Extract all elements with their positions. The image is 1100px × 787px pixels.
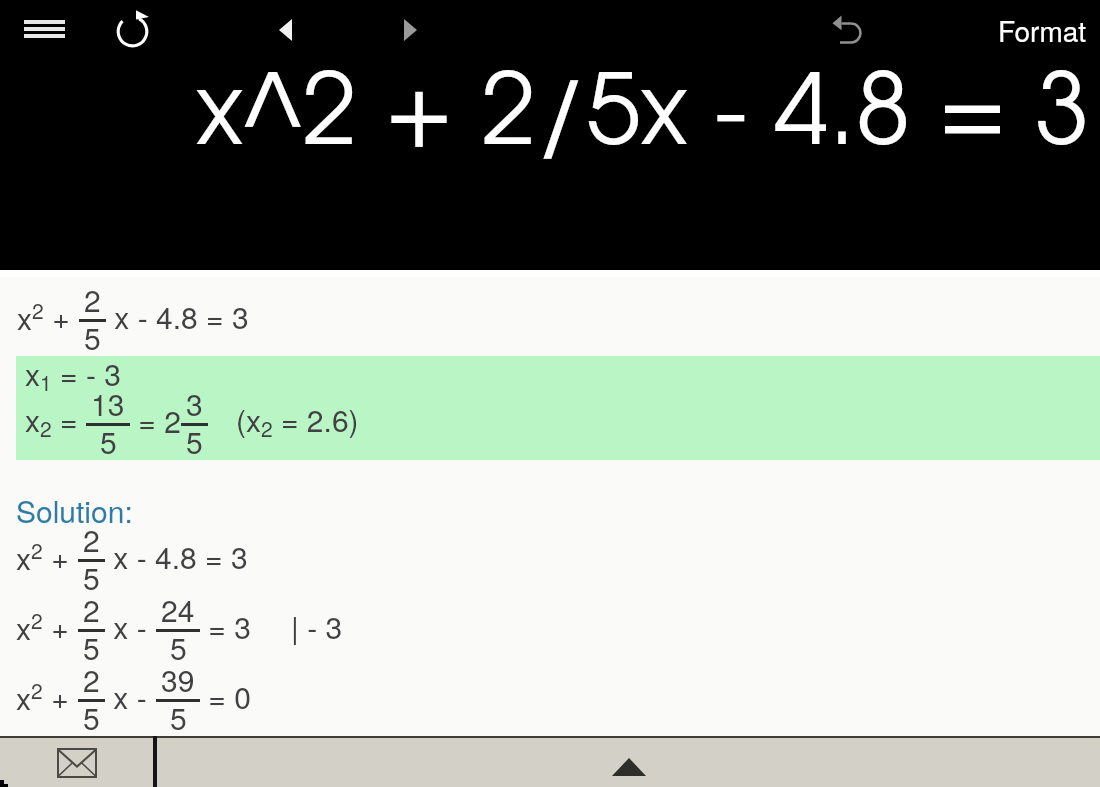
staticText: 13	[91, 382, 125, 425]
staticText: x2	[16, 675, 43, 718]
button[interactable]	[14, 8, 74, 52]
staticText: = 0	[200, 675, 251, 718]
staticText: x^2 + 2/5x - 4.8 = 3	[196, 72, 1090, 163]
staticText: 5	[170, 696, 187, 739]
staticText: x -	[105, 605, 156, 648]
staticText: 5	[100, 420, 117, 463]
staticText: 5	[83, 626, 100, 669]
staticText: Format	[998, 10, 1087, 50]
button[interactable]	[265, 8, 309, 52]
staticText: +	[43, 605, 78, 648]
staticText: | - 3	[291, 605, 343, 648]
staticText: = 2	[130, 399, 181, 442]
button[interactable]	[157, 738, 1100, 787]
staticText: 39	[161, 658, 195, 701]
staticText: 2	[83, 658, 100, 701]
staticText: +	[43, 535, 78, 578]
button[interactable]: Format	[985, 8, 1095, 52]
staticText: 2	[84, 278, 101, 321]
staticText: +	[44, 295, 79, 338]
staticText: x2	[16, 535, 43, 578]
staticText: 5	[186, 420, 203, 463]
staticText: 5	[170, 626, 187, 669]
button[interactable]	[390, 8, 434, 52]
staticText: 5	[83, 556, 100, 599]
staticText: +	[43, 675, 78, 718]
staticText: x1 = - 3	[25, 352, 121, 397]
staticText: x2	[16, 605, 43, 648]
button[interactable]	[116, 10, 156, 54]
staticText: 2	[83, 518, 100, 561]
staticText: x -	[105, 675, 156, 718]
staticText: 5	[83, 696, 100, 739]
staticText: 3	[186, 382, 203, 425]
staticText: 5	[84, 316, 101, 359]
staticText: x - 4.8 = 3	[106, 295, 249, 338]
staticText: x - 4.8 = 3	[105, 535, 248, 578]
staticText: Solution:	[16, 489, 133, 532]
staticText: = 3	[200, 605, 251, 648]
button[interactable]	[824, 8, 872, 52]
button[interactable]	[0, 738, 153, 787]
staticText: (x2 = 2.6)	[236, 398, 359, 443]
staticText: 2	[83, 588, 100, 631]
staticText: 24	[161, 588, 195, 631]
staticText: x2	[17, 295, 44, 338]
staticText: x2 =	[25, 398, 86, 443]
